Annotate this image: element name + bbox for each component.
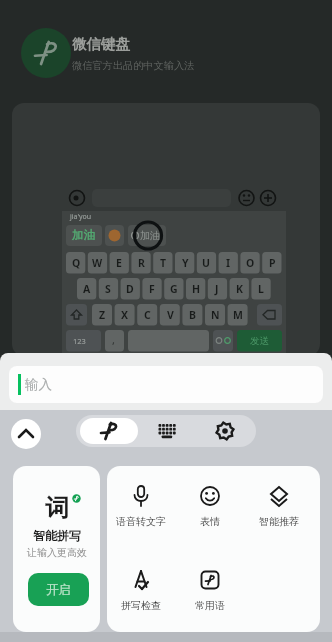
button[interactable] xyxy=(196,415,254,447)
staticText: P xyxy=(269,256,276,270)
button[interactable]: 拼写检查 xyxy=(113,568,168,612)
button[interactable]: 开启 xyxy=(28,573,89,606)
button[interactable] xyxy=(80,418,138,444)
staticText: O xyxy=(246,256,255,270)
staticText: 微信官方出品的中文输入法 xyxy=(72,59,195,72)
staticText: 微信键盘 xyxy=(72,35,130,53)
staticText: N xyxy=(211,308,220,322)
staticText: I xyxy=(226,256,231,270)
staticText: Y xyxy=(182,256,189,270)
staticText: U xyxy=(202,256,210,270)
button[interactable]: 输入 xyxy=(9,366,323,403)
button[interactable]: 语音转文字 xyxy=(113,484,168,528)
staticText: 123 xyxy=(73,336,86,346)
staticText: 发送 xyxy=(250,335,269,347)
staticText: K xyxy=(236,282,243,296)
button[interactable] xyxy=(11,419,41,449)
staticText: T xyxy=(160,256,167,270)
button[interactable]: 常用语 xyxy=(182,568,237,612)
staticText: 开启 xyxy=(46,582,71,598)
staticText: 拼写检查 xyxy=(121,599,161,612)
staticText: 智能拼写 xyxy=(33,528,81,543)
staticText: L xyxy=(258,282,264,296)
staticText: 加油 xyxy=(72,228,95,242)
staticText: W xyxy=(92,256,103,270)
staticText: 词 xyxy=(45,493,69,523)
staticText: jia'you xyxy=(70,212,92,222)
staticText: C xyxy=(144,308,151,322)
staticText: , xyxy=(112,332,115,347)
staticText: S xyxy=(105,282,111,296)
staticText: 智能推荐 xyxy=(259,515,299,528)
staticText: X xyxy=(121,308,129,322)
button[interactable]: 表情 xyxy=(182,484,237,528)
staticText: E xyxy=(116,256,122,270)
staticText: 表情 xyxy=(200,515,220,528)
button[interactable] xyxy=(138,415,196,447)
staticText: 语音转文字 xyxy=(116,515,166,528)
staticText: B xyxy=(189,308,196,322)
staticText: Q xyxy=(72,256,81,270)
staticText: A xyxy=(83,282,91,296)
staticText: 让输入更高效 xyxy=(27,546,87,559)
staticText: 加油 xyxy=(140,229,160,242)
staticText: R xyxy=(138,256,145,270)
staticText: H xyxy=(192,282,201,296)
staticText: M xyxy=(233,308,243,322)
staticText: G xyxy=(170,282,178,296)
staticText: J xyxy=(215,282,219,296)
button[interactable]: 智能推荐 xyxy=(251,484,306,528)
button[interactable] xyxy=(21,28,71,78)
staticText: D xyxy=(126,282,134,296)
staticText: 常用语 xyxy=(195,599,225,612)
staticText: 输入 xyxy=(25,376,52,393)
staticText: Z xyxy=(99,308,106,322)
staticText: F xyxy=(149,282,155,296)
staticText: V xyxy=(167,308,174,322)
